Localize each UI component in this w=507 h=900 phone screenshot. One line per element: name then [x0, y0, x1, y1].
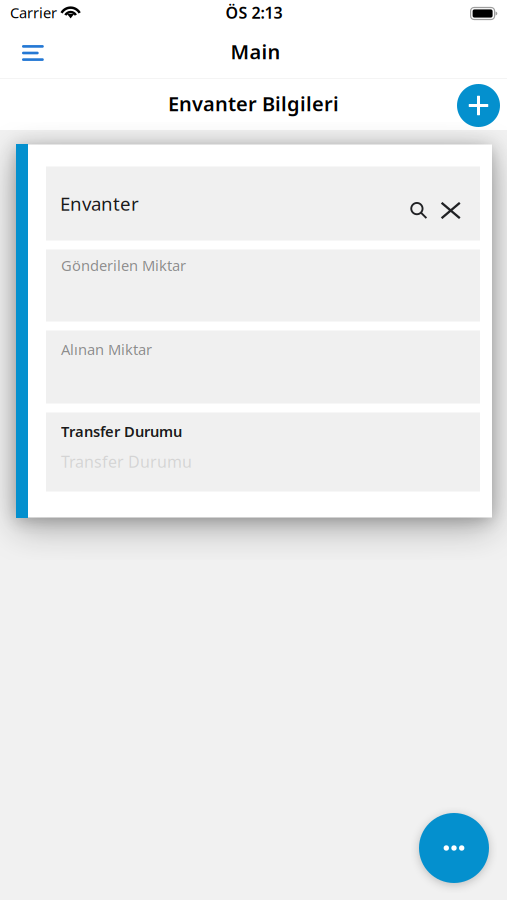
staticText: Gönderilen Miktar	[61, 255, 186, 275]
button[interactable]: Add	[457, 79, 507, 130]
staticText: Alınan Miktar	[61, 339, 152, 359]
staticText: Carrier	[10, 3, 57, 22]
button[interactable]: More options	[419, 813, 507, 900]
staticText: ÖS 2:13	[225, 2, 282, 23]
staticText: Transfer Durumu	[61, 421, 182, 441]
staticText: Envanter	[60, 191, 139, 216]
staticText: Main	[230, 38, 280, 65]
button[interactable]: Menu	[0, 29, 60, 76]
button[interactable]: Clear	[427, 195, 461, 212]
staticText: Transfer Durumu	[61, 451, 192, 472]
button[interactable]: Search	[410, 195, 427, 212]
staticText: Envanter Bilgileri	[168, 90, 339, 117]
